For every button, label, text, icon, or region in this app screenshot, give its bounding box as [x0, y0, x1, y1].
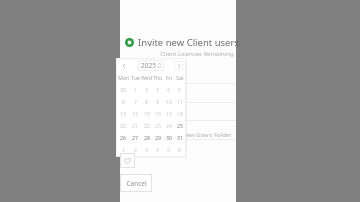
- button[interactable]: 1: [129, 84, 141, 95]
- button[interactable]: 4: [163, 84, 174, 95]
- staticText: 5: [167, 146, 170, 153]
- staticText: 28: [144, 134, 150, 141]
- button[interactable]: 14: [129, 107, 141, 119]
- button[interactable]: 18: [174, 107, 185, 119]
- staticText: 3: [156, 86, 159, 93]
- button[interactable]: 4: [152, 143, 163, 155]
- button[interactable]: 30: [117, 84, 129, 95]
- staticText: 1: [134, 86, 137, 93]
- staticText: 20: [120, 122, 126, 129]
- staticText: 2: [134, 146, 137, 153]
- button[interactable]: 11: [174, 95, 185, 107]
- staticText: 11: [177, 98, 183, 105]
- button[interactable]: Previous: [119, 61, 128, 70]
- staticText: 16: [155, 110, 161, 117]
- staticText: 4: [156, 146, 159, 153]
- staticText: Tue: [131, 75, 140, 82]
- staticText: 29: [155, 134, 161, 141]
- staticText: 24: [166, 122, 172, 129]
- staticText: 9: [156, 98, 159, 105]
- button[interactable]: 9: [152, 95, 163, 107]
- staticText: 18: [177, 110, 183, 117]
- button[interactable]: 28: [141, 131, 152, 143]
- button[interactable]: Next: [174, 61, 183, 70]
- button[interactable]: 16: [152, 107, 163, 119]
- staticText: 2: [145, 86, 148, 93]
- staticText: 30: [166, 134, 172, 141]
- staticText: 17: [166, 110, 172, 117]
- button[interactable]: Cancel: [120, 174, 152, 192]
- button[interactable]: 5: [174, 84, 185, 95]
- staticText: 25: [177, 122, 183, 129]
- button[interactable]: 13: [117, 107, 129, 119]
- button[interactable]: 27: [129, 131, 141, 143]
- staticText: 15: [144, 110, 150, 117]
- staticText: 8: [145, 98, 148, 105]
- staticText: 2025: [141, 61, 156, 70]
- button[interactable]: 20: [117, 119, 129, 131]
- staticText: Sat: [176, 75, 184, 82]
- staticText: Fri: [166, 75, 172, 82]
- staticText: 1: [122, 146, 125, 153]
- staticText: Thu: [153, 75, 162, 82]
- button[interactable]: 26: [117, 131, 129, 143]
- staticText: 26: [120, 134, 126, 141]
- button[interactable]: 3: [152, 84, 163, 95]
- button[interactable]: Favourite: [120, 153, 135, 168]
- button[interactable]: 2: [141, 84, 152, 95]
- staticText: 31: [177, 134, 183, 141]
- button[interactable]: 17: [163, 107, 174, 119]
- button[interactable]: 8: [141, 95, 152, 107]
- staticText: Invite new Client users: [138, 36, 239, 49]
- staticText: Wed: [141, 75, 152, 82]
- staticText: 13: [120, 110, 126, 117]
- button[interactable]: 1: [117, 143, 129, 155]
- button[interactable]: 30: [163, 131, 174, 143]
- staticText: 21: [132, 122, 138, 129]
- staticText: 14: [132, 110, 138, 117]
- staticText: Client Licences Remaining: [160, 50, 234, 58]
- button[interactable]: 22: [141, 119, 152, 131]
- button[interactable]: 31: [174, 131, 185, 143]
- button[interactable]: 23: [152, 119, 163, 131]
- button[interactable]: 10: [163, 95, 174, 107]
- button[interactable]: 6: [174, 143, 185, 155]
- staticText: 22: [144, 122, 150, 129]
- button[interactable]: 21: [129, 119, 141, 131]
- staticText: New Users Folder: [182, 131, 232, 139]
- staticText: Mon: [118, 75, 129, 82]
- staticText: 27: [132, 134, 138, 141]
- button[interactable]: 15: [141, 107, 152, 119]
- staticText: 3: [145, 146, 148, 153]
- staticText: 5: [178, 86, 181, 93]
- button[interactable]: 6: [117, 95, 129, 107]
- staticText: 7: [134, 98, 137, 105]
- button[interactable]: 25: [174, 119, 185, 131]
- staticText: 10: [166, 98, 172, 105]
- button[interactable]: 5: [163, 143, 174, 155]
- button[interactable]: 3: [141, 143, 152, 155]
- button[interactable]: 7: [129, 95, 141, 107]
- staticText: 6: [122, 98, 125, 105]
- staticText: 6: [178, 146, 181, 153]
- staticText: 23: [155, 122, 161, 129]
- button[interactable]: 24: [163, 119, 174, 131]
- staticText: Cancel: [126, 179, 147, 188]
- button[interactable]: 2: [129, 143, 141, 155]
- staticText: 4: [167, 86, 170, 93]
- button[interactable]: 2025: [141, 61, 161, 70]
- button[interactable]: Invite new Client users: [125, 35, 239, 49]
- staticText: 30: [120, 86, 126, 93]
- button[interactable]: 29: [152, 131, 163, 143]
